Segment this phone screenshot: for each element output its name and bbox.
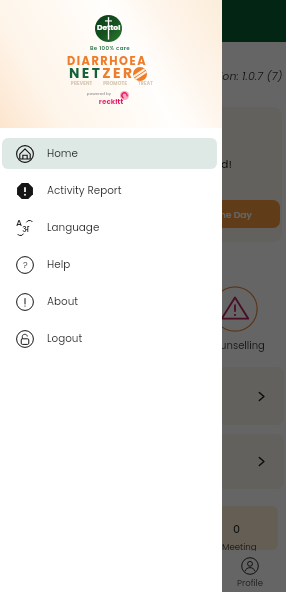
staticText: PREVENT PROMOTE TREAT	[12, 80, 212, 86]
staticText: Home	[47, 146, 78, 161]
staticText: Counselling	[206, 338, 265, 352]
button[interactable]	[3, 107, 282, 242]
staticText: NETZER	[69, 63, 135, 82]
button[interactable]: Logout	[2, 323, 217, 354]
staticText: Meeting	[222, 541, 257, 553]
button[interactable]: Start The Day	[167, 200, 280, 228]
staticText: A	[16, 217, 23, 229]
staticText: Dettol	[97, 22, 121, 33]
staticText: Be 100% care	[10, 44, 210, 52]
staticText: reckitt	[11, 96, 211, 106]
staticText: App Version: 1.0.7 (7)	[170, 68, 283, 83]
button[interactable]: 0	[196, 506, 278, 550]
staticText: Welcome, Dr. Rakesh Anand!	[73, 156, 232, 171]
button[interactable]	[3, 434, 284, 489]
button[interactable]: Profile	[214, 551, 286, 589]
staticText: DIARRHOEA	[7, 53, 207, 69]
button[interactable]: Activity Report	[2, 175, 217, 206]
button[interactable]: Home	[2, 138, 217, 169]
staticText: Logout	[47, 331, 83, 346]
button[interactable]	[0, 0, 286, 592]
staticText: Language	[47, 220, 100, 235]
staticText: powered by	[0, 91, 199, 97]
staticText: Activity Report	[47, 183, 122, 198]
staticText: Help	[47, 257, 71, 272]
button[interactable]: About	[2, 286, 217, 317]
staticText: ?	[23, 259, 28, 272]
staticText: About	[47, 294, 79, 309]
staticText: अ	[22, 223, 30, 235]
button[interactable]	[3, 367, 284, 425]
button[interactable]: ?	[2, 249, 217, 280]
button[interactable]: Diarrhoea Counselling	[212, 286, 258, 332]
staticText: Start The Day	[190, 208, 252, 221]
staticText: 0	[233, 521, 241, 536]
staticText: Profile	[237, 577, 264, 589]
button[interactable]: A	[2, 212, 217, 243]
